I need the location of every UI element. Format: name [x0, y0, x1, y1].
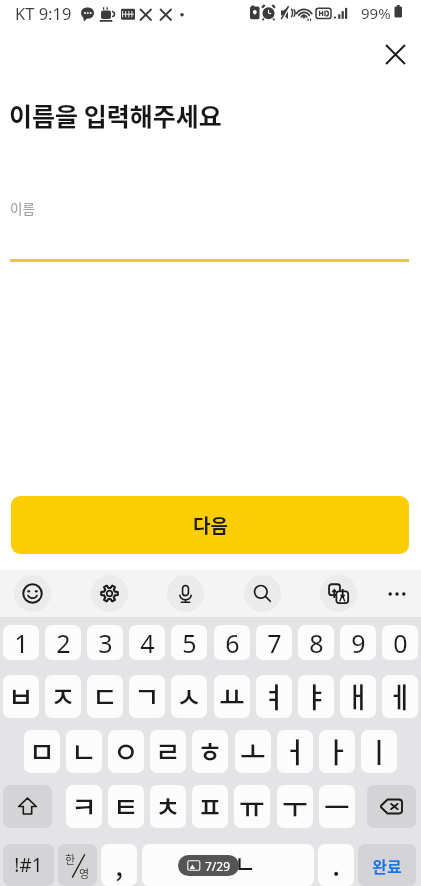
button[interactable]: 6	[214, 625, 250, 660]
staticText: ㅕ	[261, 676, 287, 717]
button[interactable]: ㅐ	[340, 675, 376, 718]
staticText: 이름을 입력해주세요	[9, 97, 222, 133]
button[interactable]: Translate	[320, 575, 357, 612]
staticText: 0	[393, 626, 408, 660]
button[interactable]: ㅛ	[214, 675, 250, 718]
button[interactable]: .	[318, 844, 354, 886]
staticText: ㅏ	[324, 731, 350, 772]
button[interactable]: 2	[45, 625, 81, 660]
staticText: 이름	[10, 198, 35, 218]
button[interactable]: Shift	[3, 785, 52, 828]
staticText: ㄹ	[155, 731, 181, 772]
button[interactable]: ㅋ	[66, 785, 102, 828]
staticText: ,	[115, 846, 123, 884]
staticText: 3	[98, 626, 113, 660]
staticText: ㅜ	[282, 786, 308, 827]
staticText: 4	[140, 626, 155, 660]
staticText: !#1	[14, 852, 43, 878]
staticText: ㅊ	[155, 786, 181, 827]
staticText: 7/29	[205, 858, 231, 874]
button[interactable]: ㅕ	[256, 675, 292, 718]
button[interactable]: 0	[382, 625, 418, 660]
button[interactable]: 9	[340, 625, 376, 660]
button[interactable]: 8	[298, 625, 334, 660]
staticText: .	[332, 846, 340, 884]
button[interactable]: ㅎ	[192, 730, 228, 773]
staticText: ㅣ	[366, 731, 392, 772]
staticText: ㄷ	[92, 676, 118, 717]
staticText: 2	[56, 626, 71, 660]
button[interactable]: ㅂ	[3, 675, 39, 718]
button[interactable]: ㅌ	[108, 785, 144, 828]
button[interactable]: Search	[244, 575, 281, 612]
button[interactable]: 다음	[11, 496, 409, 554]
button[interactable]: ㅣ	[361, 730, 397, 773]
staticText: 완료	[372, 854, 402, 877]
staticText: ㅌ	[113, 786, 139, 827]
button[interactable]: 5	[171, 625, 207, 660]
staticText: 8	[309, 626, 324, 660]
button[interactable]: Backspace	[367, 785, 416, 828]
button[interactable]: ㅓ	[277, 730, 313, 773]
staticText: ㅛ	[219, 676, 245, 717]
staticText: 다음	[193, 511, 228, 539]
staticText: ㅗ	[240, 731, 266, 772]
button[interactable]: Keyboard settings	[91, 575, 128, 612]
button[interactable]: ㅗ	[235, 730, 271, 773]
staticText: ㅔ	[387, 676, 413, 717]
button[interactable]: ㄹ	[150, 730, 186, 773]
staticText: ㅓ	[282, 731, 308, 772]
staticText: 한	[65, 851, 76, 867]
staticText: ㅎ	[197, 731, 223, 772]
button[interactable]: ㅊ	[150, 785, 186, 828]
button[interactable]: ㄱ	[129, 675, 165, 718]
staticText: 5	[182, 626, 197, 660]
staticText: ㅂ	[8, 676, 34, 717]
staticText: 영	[79, 865, 90, 881]
button[interactable]: ㅏ	[319, 730, 355, 773]
button[interactable]: Close	[373, 32, 417, 76]
staticText: ㄴ	[71, 731, 97, 772]
button[interactable]: ㅑ	[298, 675, 334, 718]
staticText: ㅅ	[176, 676, 202, 717]
button[interactable]: More options	[378, 575, 415, 612]
staticText: ㅁ	[29, 731, 55, 772]
button[interactable]: Emoji	[14, 575, 51, 612]
button[interactable]: ㅅ	[171, 675, 207, 718]
button[interactable]: ㅜ	[277, 785, 313, 828]
button[interactable]: ㄴ	[66, 730, 102, 773]
button[interactable]: ㅔ	[382, 675, 418, 718]
button[interactable]: 7	[256, 625, 292, 660]
staticText: ㅈ	[50, 676, 76, 717]
button[interactable]: ㅡ	[319, 785, 355, 828]
staticText: ㅋ	[71, 786, 97, 827]
staticText: 1	[14, 626, 29, 660]
staticText: 6	[225, 626, 240, 660]
staticText: 9	[351, 626, 366, 660]
button[interactable]: 3	[87, 625, 123, 660]
button[interactable]: ㅠ	[234, 785, 270, 828]
button[interactable]: 1	[3, 625, 39, 660]
button[interactable]: Space	[142, 844, 314, 886]
button[interactable]: 4	[129, 625, 165, 660]
staticText: 7	[267, 626, 282, 660]
button[interactable]: 완료	[358, 844, 416, 886]
button[interactable]: ㅁ	[24, 730, 60, 773]
button[interactable]: Voice input	[167, 575, 204, 612]
button[interactable]: ,	[101, 844, 137, 886]
staticText: ㅐ	[345, 676, 371, 717]
staticText: ㄴ	[234, 845, 257, 880]
button[interactable]: ㅍ	[192, 785, 228, 828]
button[interactable]: ㄷ	[87, 675, 123, 718]
staticText: ㅠ	[239, 786, 265, 827]
button[interactable]: ㅈ	[45, 675, 81, 718]
button[interactable]: Korean English toggle	[58, 844, 97, 886]
staticText: 99%	[361, 3, 391, 23]
staticText: KT 9:19	[15, 2, 72, 24]
staticText: ㅑ	[303, 676, 329, 717]
staticText: ㅇ	[113, 731, 139, 772]
staticText: ㄱ	[134, 676, 160, 717]
button[interactable]: ㅇ	[108, 730, 144, 773]
staticText: ㅍ	[197, 786, 223, 827]
button[interactable]: !#1	[3, 844, 54, 886]
